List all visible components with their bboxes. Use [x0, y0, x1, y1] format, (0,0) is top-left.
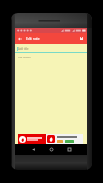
button[interactable]: Back: [28, 144, 39, 155]
button[interactable]: Back: [15, 34, 24, 43]
staticText: Edit note: [26, 37, 40, 41]
button[interactable]: Recent apps: [64, 144, 75, 155]
staticText: Add title: [18, 47, 29, 51]
button[interactable]: Save note: [77, 34, 86, 43]
staticText: Add content: [18, 56, 31, 59]
button[interactable]: Home: [46, 144, 57, 155]
button[interactable]: Add title: [17, 46, 83, 53]
button[interactable]: Advertisement: [18, 134, 83, 144]
button[interactable]: Add content: [17, 55, 89, 63]
